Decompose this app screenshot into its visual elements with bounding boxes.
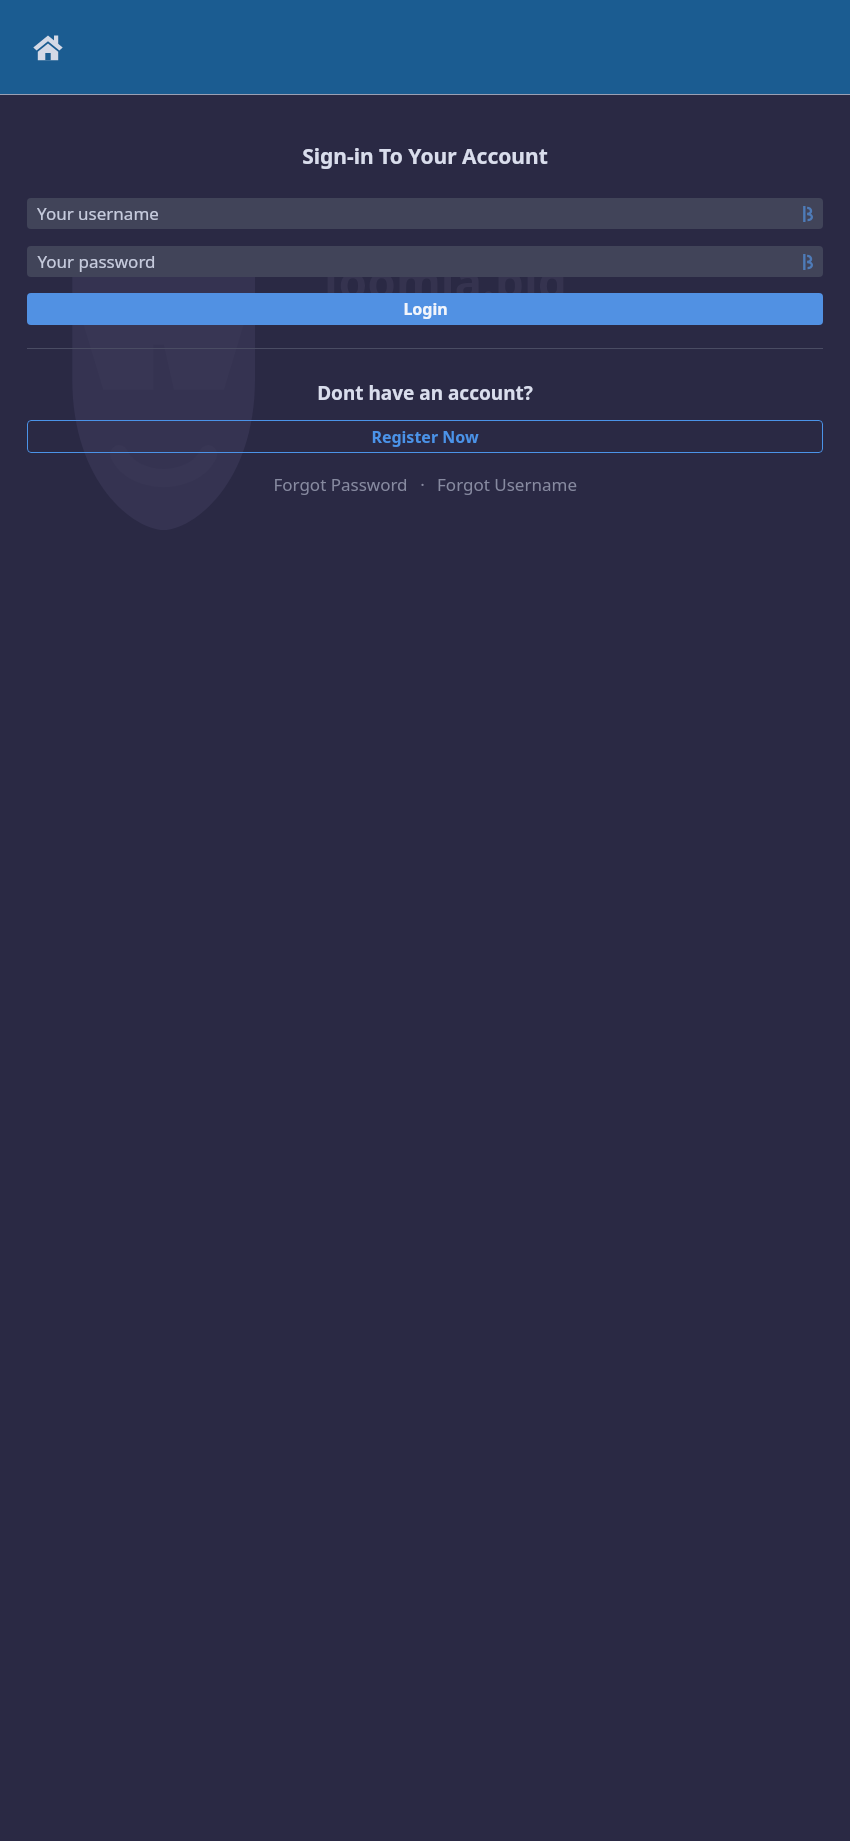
staticText: Register Now [371, 426, 479, 448]
button[interactable]: Home [22, 21, 74, 73]
staticText: Your password [37, 250, 156, 273]
button[interactable]: Your password [27, 246, 823, 277]
button[interactable]: Forgot Username [437, 473, 577, 496]
staticText: Dont have an account? [27, 380, 823, 406]
staticText: Sign-in To Your Account [27, 142, 823, 171]
button[interactable]: Register Now [27, 420, 823, 453]
button[interactable]: Your username [27, 198, 823, 229]
button[interactable]: Login [27, 293, 823, 325]
staticText: Login [403, 298, 448, 320]
staticText: Joomla.bid [323, 250, 567, 313]
button[interactable]: Forgot Password [273, 473, 408, 496]
staticText: Forgot Username [437, 473, 577, 496]
staticText: Your username [37, 202, 159, 225]
staticText: Forgot Password [273, 473, 408, 496]
staticText: · [420, 473, 425, 496]
